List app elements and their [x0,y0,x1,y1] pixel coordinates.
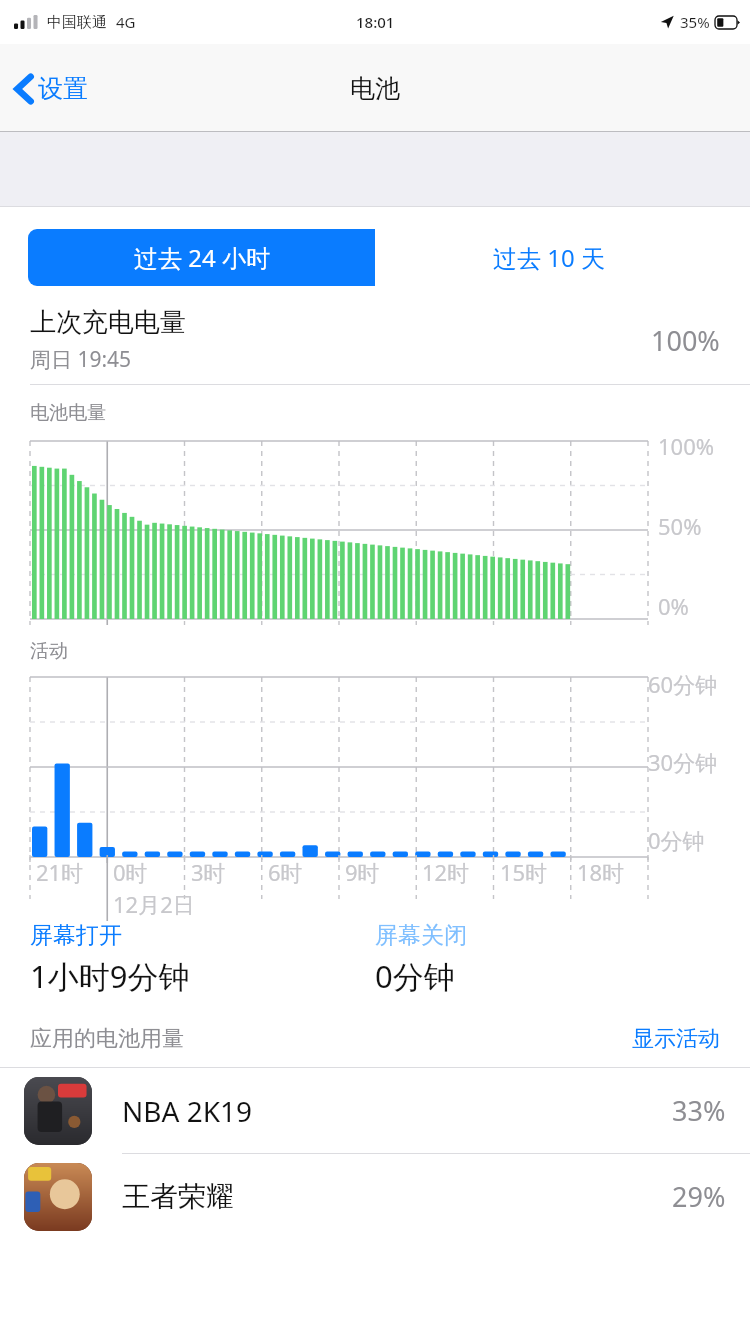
button[interactable]: NBA 2K19 [0,1068,750,1153]
staticText: 18:01 [356,12,395,32]
staticText: 屏幕关闭 [375,921,467,950]
staticText: 周日 19:45 [30,345,132,374]
button[interactable]: 过去 10 天 [375,229,722,286]
staticText: 29% [672,1178,726,1215]
staticText: 屏幕打开 [30,921,122,950]
staticText: 3时 [191,857,226,887]
staticText: 上次充电电量 [30,306,186,339]
staticText: 12时 [422,857,470,887]
staticText: 电池电量 [30,401,106,425]
staticText: 0分钟 [648,825,705,855]
staticText: 设置 [38,73,88,104]
staticText: 50% [658,511,702,541]
staticText: 35% [680,12,710,32]
button[interactable]: 王者荣耀 [0,1154,750,1239]
staticText: 12月2日 [113,889,195,919]
staticText: 过去 10 天 [493,241,605,274]
staticText: 15时 [500,857,548,887]
staticText: 0分钟 [375,955,455,997]
staticText: 过去 24 小时 [134,241,270,274]
button[interactable]: 过去 24 小时 [28,229,375,286]
staticText: 4G [116,12,136,32]
staticText: NBA 2K19 [122,1092,672,1130]
staticText: 0时 [113,857,148,887]
staticText: 王者荣耀 [122,1179,672,1214]
staticText: 电池 [350,73,400,104]
button[interactable]: 显示活动 [632,1025,720,1053]
staticText: 21时 [36,857,84,887]
staticText: 100% [658,431,715,461]
staticText: 60分钟 [648,669,718,699]
staticText: 应用的电池用量 [30,1025,632,1053]
staticText: 0% [658,591,689,621]
staticText: 显示活动 [632,1025,720,1053]
staticText: 9时 [345,857,380,887]
staticText: 33% [672,1092,726,1129]
staticText: 6时 [268,857,303,887]
button[interactable]: 设置 [12,67,92,110]
staticText: 活动 [30,639,68,663]
staticText: 1小时9分钟 [30,955,190,997]
staticText: 中国联通 [47,13,107,32]
staticText: 100% [651,322,720,359]
staticText: 30分钟 [648,747,718,777]
staticText: 18时 [577,857,625,887]
